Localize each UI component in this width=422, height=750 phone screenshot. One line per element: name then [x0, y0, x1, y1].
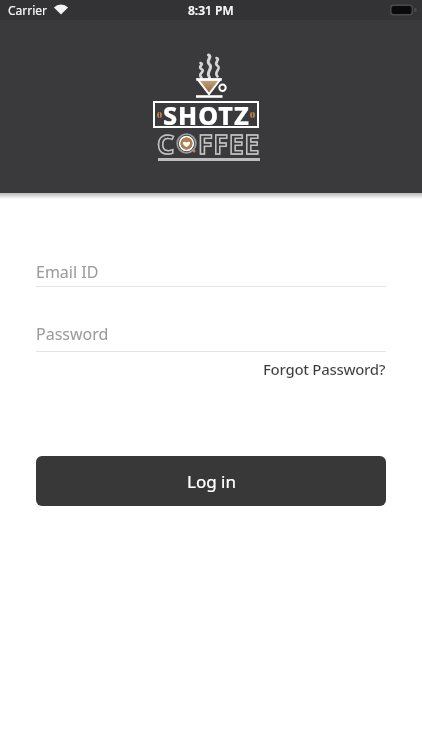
staticText: Email ID: [36, 261, 99, 283]
staticText: C: [157, 125, 175, 162]
staticText: Carrier: [8, 2, 48, 18]
staticText: Password: [36, 323, 109, 345]
staticText: Forgot Password?: [263, 359, 386, 379]
button[interactable]: Password: [36, 323, 386, 345]
staticText: 8:31 PM: [188, 2, 234, 18]
button[interactable]: Email ID: [36, 261, 386, 283]
staticText: FFEE: [198, 125, 260, 162]
staticText: SHOTZ: [163, 98, 250, 132]
button[interactable]: Log in: [36, 456, 386, 506]
staticText: Log in: [187, 470, 236, 493]
button[interactable]: Forgot Password?: [263, 359, 386, 379]
